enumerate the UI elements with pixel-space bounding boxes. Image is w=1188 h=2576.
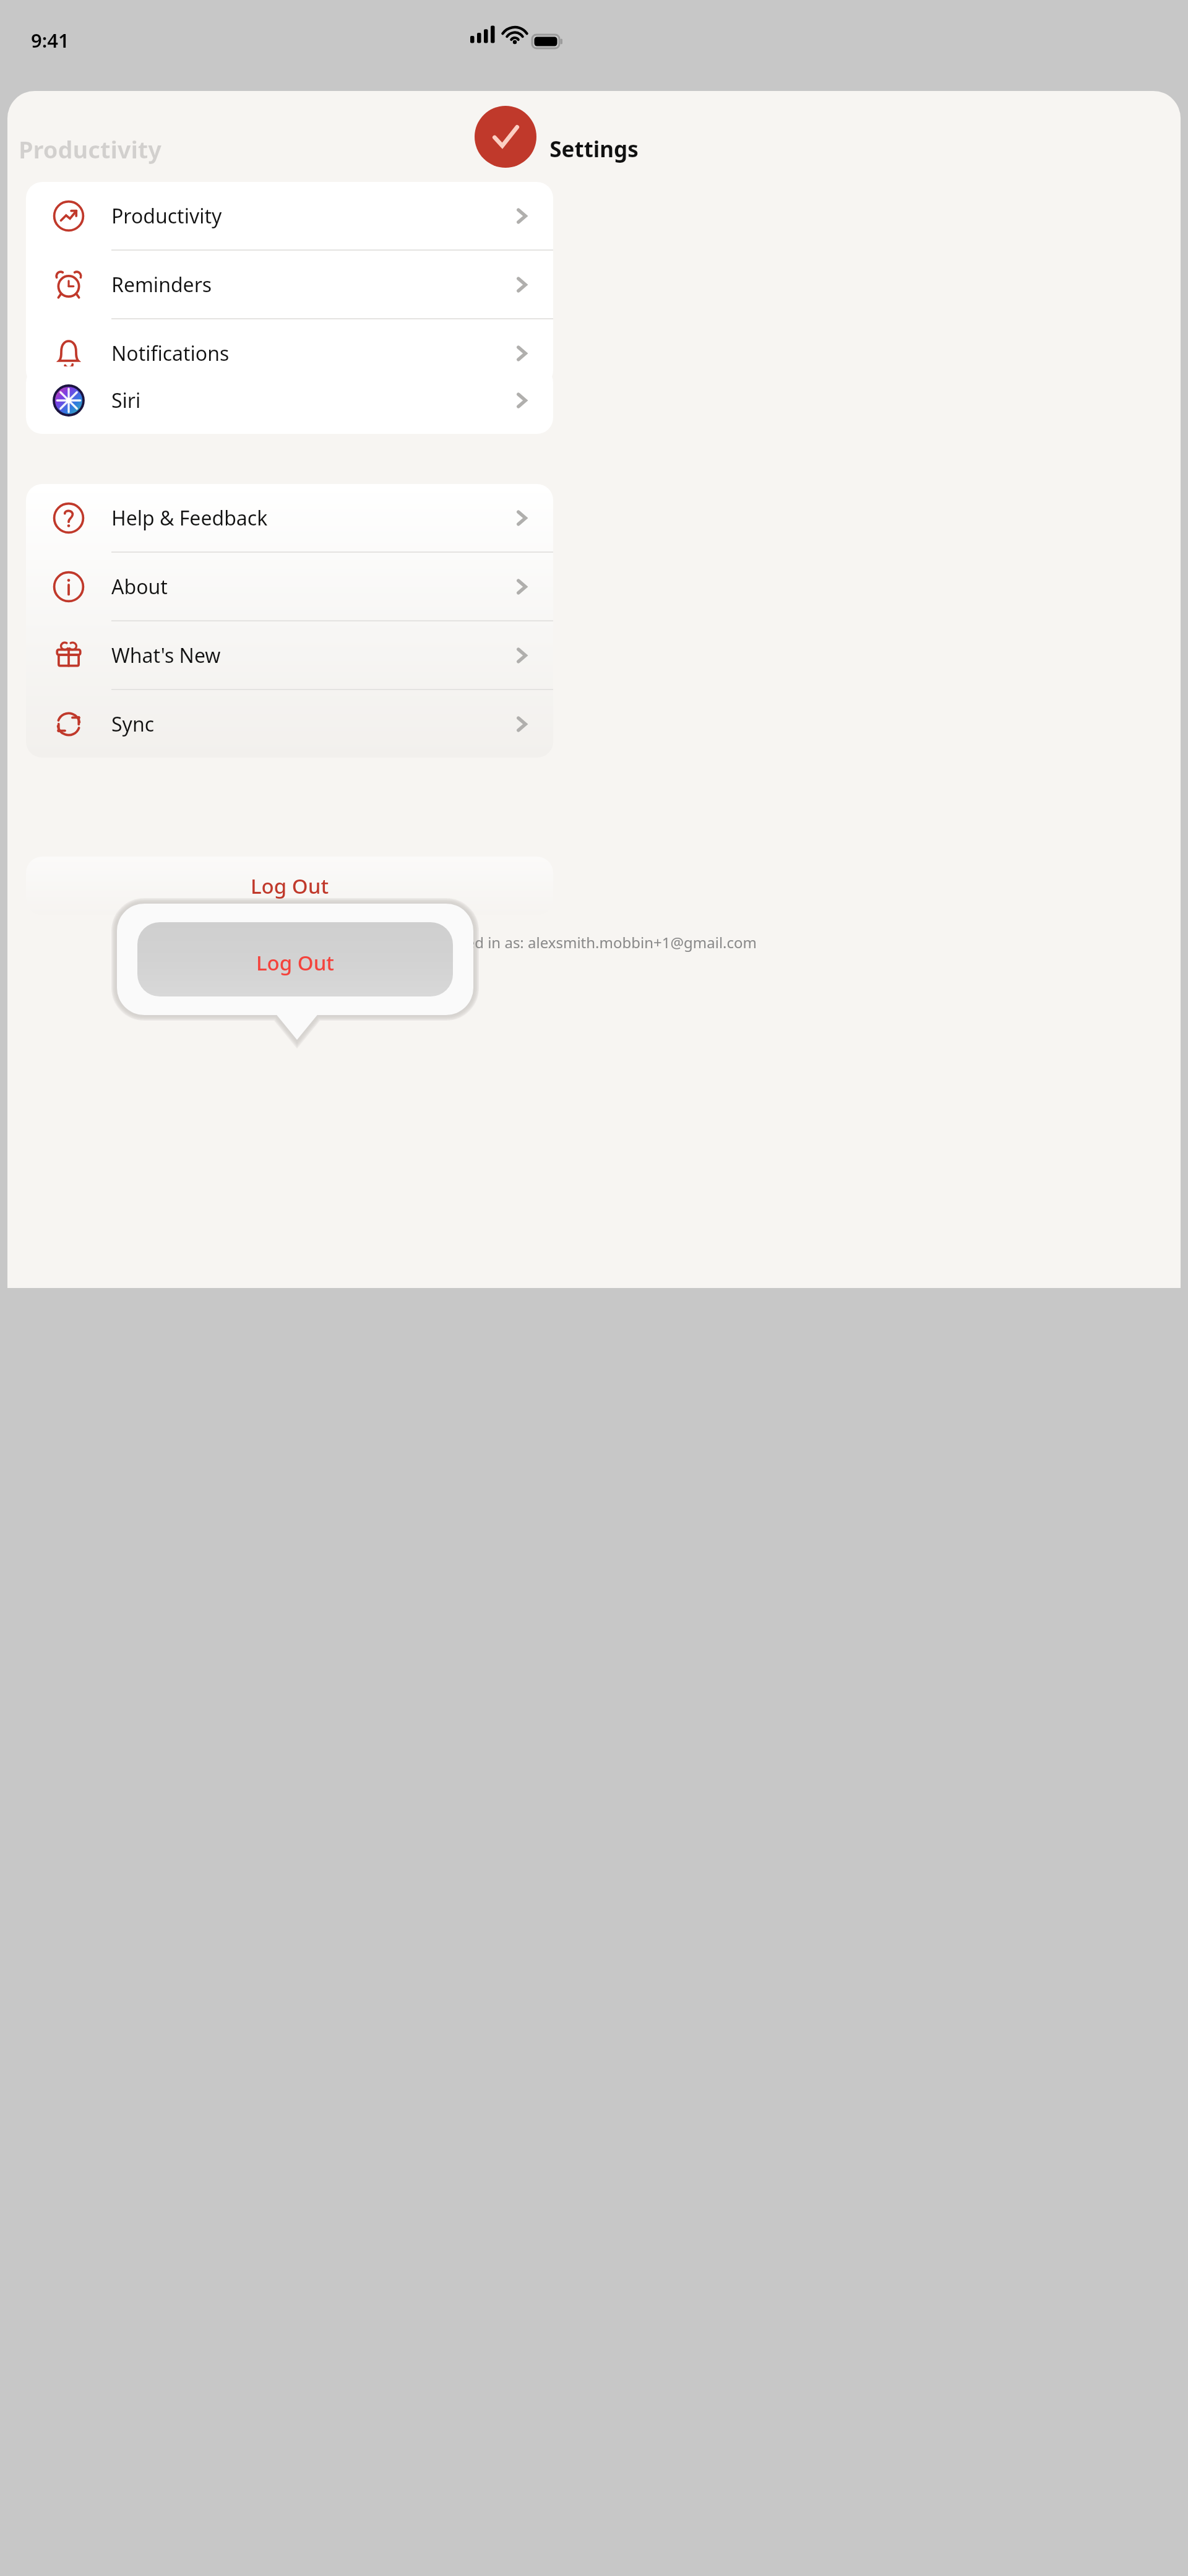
staticText: Notifications bbox=[111, 340, 230, 367]
staticText: What's New bbox=[111, 642, 221, 669]
button[interactable]: Productivity bbox=[26, 182, 553, 249]
button[interactable]: Done bbox=[475, 106, 536, 168]
button[interactable]: What's New bbox=[26, 621, 553, 689]
staticText: Productivity bbox=[111, 202, 222, 230]
staticText: Productivity bbox=[19, 133, 162, 165]
staticText: Log Out bbox=[251, 872, 329, 900]
staticText: 9:41 bbox=[31, 27, 69, 53]
button[interactable]: Help & Feedback bbox=[26, 484, 553, 551]
button[interactable]: Sync bbox=[26, 690, 553, 758]
staticText: Sync bbox=[111, 711, 155, 738]
button[interactable]: Siri bbox=[26, 366, 553, 434]
staticText: Logged in as: alexsmith.mobbin+1@gmail.c… bbox=[7, 932, 1181, 953]
staticText: Reminders bbox=[111, 271, 212, 298]
staticText: Log Out bbox=[117, 949, 473, 977]
button[interactable]: About bbox=[26, 553, 553, 620]
button[interactable]: Log Out bbox=[26, 857, 553, 915]
button[interactable]: Log Out menu bbox=[105, 894, 489, 1055]
staticText: Settings bbox=[7, 134, 1181, 164]
staticText: Siri bbox=[111, 387, 141, 414]
button[interactable]: Reminders bbox=[26, 251, 553, 318]
staticText: Help & Feedback bbox=[111, 504, 268, 532]
button[interactable]: Notifications bbox=[26, 319, 553, 387]
staticText: About bbox=[111, 573, 168, 600]
